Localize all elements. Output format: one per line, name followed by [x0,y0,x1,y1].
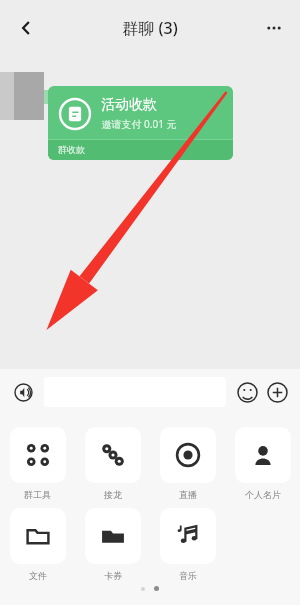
button[interactable]: Voice input [8,377,38,407]
staticText: 卡券 [104,570,122,581]
staticText: 群聊 (3) [122,17,178,39]
button[interactable]: More options [254,8,294,48]
staticText: 邀请支付 0.01 元 [101,117,177,131]
staticText: 接龙 [104,489,122,500]
button[interactable]: 音乐 [150,508,225,581]
staticText: 直播 [179,489,197,500]
button[interactable]: 活动收款 [48,86,233,160]
staticText: 音乐 [179,570,197,581]
button[interactable]: More attachments [262,377,292,407]
button[interactable]: 接龙 [75,427,150,500]
staticText: 活动收款 [101,96,157,114]
button[interactable]: 个人名片 [225,427,300,500]
staticText: 文件 [29,570,47,581]
button[interactable]: 群工具 [0,427,75,500]
button[interactable]: 直播 [150,427,225,500]
staticText: 群工具 [24,489,51,500]
button[interactable]: 卡券 [75,508,150,581]
button[interactable]: Emoji [232,377,262,407]
button[interactable]: 文件 [0,508,75,581]
button[interactable]: Back [6,8,46,48]
staticText: 群收款 [58,144,85,155]
staticText: 个人名片 [245,489,281,500]
